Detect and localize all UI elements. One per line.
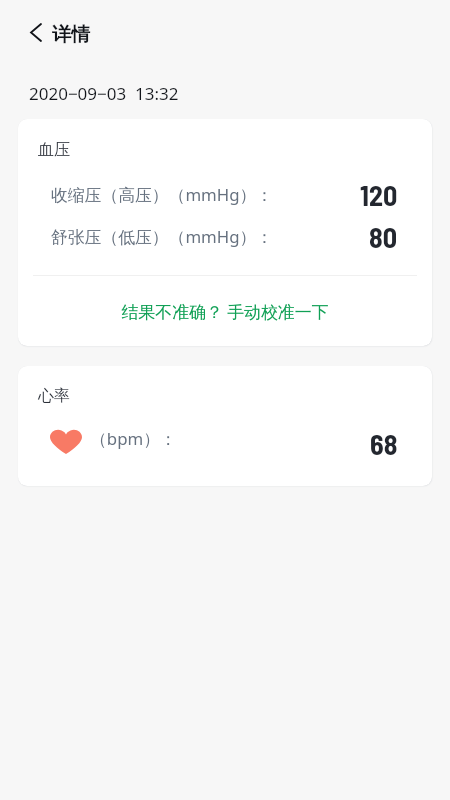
staticText: 血压 xyxy=(38,140,70,160)
staticText: 详情 xyxy=(52,23,90,47)
staticText: 心率 xyxy=(38,386,70,406)
staticText: 80 xyxy=(369,220,398,254)
staticText: （bpm）： xyxy=(90,427,177,450)
staticText: 收缩压（高压）（mmHg）： xyxy=(51,183,274,206)
staticText: 2020−09−03 13:32 xyxy=(29,82,179,105)
staticText: 结果不准确？ 手动校准一下 xyxy=(121,300,329,323)
button[interactable]: Back xyxy=(16,13,56,53)
button[interactable]: 结果不准确？ 手动校准一下 xyxy=(18,276,432,346)
staticText: 68 xyxy=(370,427,398,461)
staticText: 120 xyxy=(360,178,398,212)
staticText: 舒张压（低压）（mmHg）： xyxy=(51,225,274,248)
